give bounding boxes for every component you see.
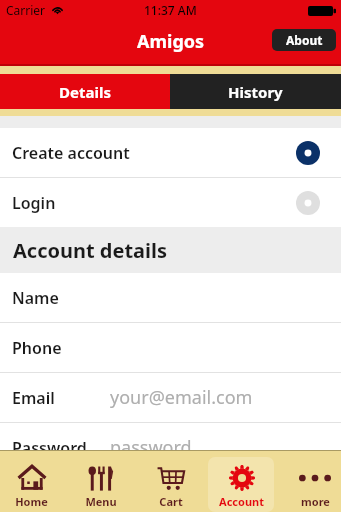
button[interactable]: Cart (136, 451, 206, 512)
button[interactable]: Name (0, 273, 341, 322)
button[interactable]: Menu (66, 451, 136, 512)
button[interactable]: About (272, 29, 336, 51)
other: Menu (87, 464, 115, 492)
staticText: Account (219, 494, 264, 509)
button[interactable]: Create account (0, 128, 341, 177)
staticText: 11:37 AM (144, 2, 197, 18)
staticText: Account details (13, 237, 168, 264)
staticText: Login (12, 192, 56, 214)
button[interactable]: History (170, 74, 341, 109)
staticText: Name (12, 287, 59, 309)
staticText: Create account (12, 142, 130, 164)
staticText: Carrier (6, 2, 46, 18)
staticText: Email (12, 387, 55, 409)
staticText: more (301, 494, 330, 509)
staticText: Details (59, 82, 111, 102)
button[interactable]: Details (0, 74, 170, 109)
button[interactable]: Email (0, 373, 341, 422)
other: Account (228, 464, 256, 492)
other: Cart (157, 464, 185, 492)
staticText: Menu (85, 494, 117, 509)
button[interactable]: Login (0, 178, 341, 227)
staticText: password (110, 435, 192, 460)
staticText: About (286, 32, 323, 48)
staticText: Amigos (137, 29, 205, 54)
staticText: Phone (12, 337, 62, 359)
staticText: Password (12, 437, 87, 459)
button[interactable]: Account (206, 451, 276, 512)
button[interactable]: More (276, 451, 341, 512)
other: More (299, 464, 331, 492)
button[interactable]: Password (0, 423, 341, 472)
staticText: your@email.com (110, 385, 253, 410)
staticText: History (228, 82, 283, 102)
other: Home (18, 464, 46, 492)
button[interactable]: Phone (0, 323, 341, 372)
staticText: Cart (159, 494, 183, 509)
button[interactable]: Home (0, 451, 66, 512)
staticText: Home (15, 494, 48, 509)
